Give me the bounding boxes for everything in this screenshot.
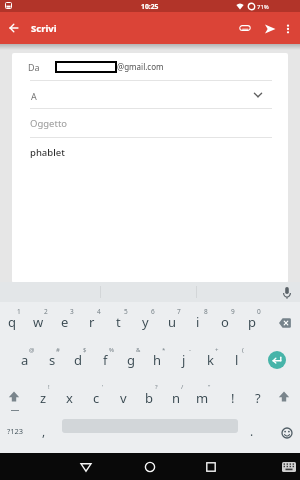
staticText: 9 (231, 307, 235, 316)
staticText: 5 (124, 307, 128, 316)
button[interactable] (280, 285, 294, 301)
button[interactable]: i (158, 310, 238, 334)
staticText: # (56, 346, 60, 354)
staticText: Da (28, 61, 40, 73)
button[interactable]: t (78, 310, 158, 334)
staticText: @gmail.com (117, 61, 164, 72)
button[interactable] (6, 20, 22, 36)
button[interactable] (268, 351, 286, 369)
staticText: Oggetto (30, 117, 68, 130)
button[interactable]: q (0, 310, 52, 334)
button[interactable]: z (3, 386, 83, 410)
staticText: ( (242, 346, 244, 354)
button[interactable]: , (4, 419, 84, 443)
button[interactable]: v (83, 386, 163, 410)
staticText: r (89, 313, 95, 331)
button[interactable] (202, 458, 220, 476)
staticText: % (109, 346, 114, 354)
button[interactable]: ! (193, 386, 273, 410)
button[interactable]: u (132, 310, 212, 334)
staticText: o (221, 313, 229, 331)
staticText: / (181, 383, 184, 391)
staticText: * (162, 346, 166, 354)
staticText: u (168, 313, 177, 331)
button[interactable]: s (12, 348, 92, 372)
staticText: & (136, 346, 141, 354)
button[interactable]: Scrivi (31, 20, 101, 36)
button[interactable] (251, 89, 265, 101)
button[interactable] (12, 108, 300, 136)
staticText: . (250, 423, 254, 439)
button[interactable] (280, 460, 298, 474)
button[interactable] (141, 458, 159, 476)
staticText: ! (231, 389, 235, 407)
staticText: f (103, 351, 108, 369)
staticText: " (208, 383, 211, 391)
button[interactable]: g (91, 348, 171, 372)
button[interactable]: x (29, 386, 109, 410)
button[interactable]: p (212, 310, 292, 334)
staticText: y (142, 313, 149, 331)
staticText: @ (29, 346, 35, 354)
staticText: 7 (177, 307, 181, 316)
staticText: e (61, 313, 69, 331)
button[interactable]: m (162, 386, 242, 410)
button[interactable]: l (197, 348, 277, 372)
button[interactable] (77, 458, 95, 476)
staticText: 3 (70, 307, 74, 316)
button[interactable] (281, 20, 295, 38)
staticText: p (248, 313, 256, 331)
staticText: k (207, 351, 214, 369)
staticText: g (127, 351, 135, 369)
button[interactable]: r (52, 310, 132, 334)
staticText: ! (48, 383, 50, 391)
button[interactable]: . (212, 419, 292, 443)
button[interactable] (279, 425, 295, 441)
staticText: q (8, 313, 16, 331)
button[interactable]: c (56, 386, 136, 410)
staticText: d (74, 351, 82, 369)
staticText: n (172, 389, 181, 407)
staticText: 6 (151, 307, 155, 316)
staticText: 4 (97, 307, 101, 316)
staticText: ?123 (7, 426, 24, 436)
staticText: phablet (30, 146, 65, 159)
button[interactable] (277, 316, 293, 330)
button[interactable]: k (170, 348, 250, 372)
staticText: - (189, 346, 191, 354)
button[interactable]: a (0, 348, 65, 372)
button[interactable] (275, 388, 293, 406)
button[interactable]: e (25, 310, 105, 334)
button[interactable]: b (109, 386, 189, 410)
staticText: b (145, 389, 153, 407)
button[interactable] (12, 81, 300, 107)
staticText: l (235, 351, 239, 369)
staticText: s (49, 351, 56, 369)
button[interactable]: ? (218, 386, 298, 410)
button[interactable] (5, 388, 23, 406)
button[interactable]: f (65, 348, 145, 372)
staticText: z (40, 389, 47, 407)
button[interactable]: o (185, 310, 265, 334)
staticText: j (182, 351, 186, 369)
button[interactable]: h (117, 348, 197, 372)
button[interactable] (262, 21, 278, 37)
staticText: 71% (257, 3, 269, 11)
button[interactable]: y (105, 310, 185, 334)
button[interactable]: w (0, 310, 78, 334)
staticText: w (33, 313, 44, 331)
staticText: + (215, 346, 219, 354)
staticText: 0 (257, 307, 261, 316)
button[interactable]: phablet (30, 145, 130, 159)
staticText: i (196, 313, 200, 331)
staticText: c (93, 389, 100, 407)
staticText: ? (155, 383, 158, 391)
button[interactable]: j (144, 348, 224, 372)
staticText: $ (83, 346, 87, 354)
button[interactable] (237, 20, 253, 36)
button[interactable]: ?123 (0, 419, 55, 443)
button[interactable]: n (136, 386, 216, 410)
staticText: 10:25 (141, 2, 159, 11)
button[interactable]: d (38, 348, 118, 372)
